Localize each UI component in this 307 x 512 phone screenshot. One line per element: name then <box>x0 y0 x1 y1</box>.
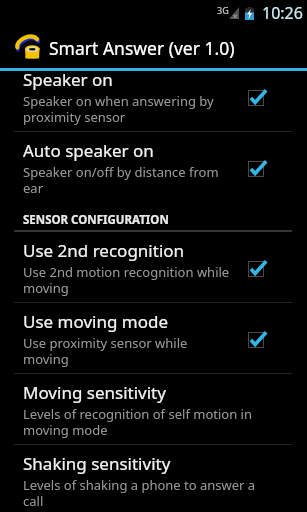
button[interactable]: Use 2nd recognition <box>0 232 307 302</box>
staticText: 10:26 <box>262 2 303 24</box>
staticText: Speaker on <box>23 68 113 91</box>
staticText: Moving sensitivity <box>23 381 166 404</box>
staticText: Use 2nd motion recognition while moving <box>23 263 232 296</box>
button[interactable]: Use 2nd recognition checkbox <box>232 232 288 302</box>
button[interactable]: Auto speaker on checkbox <box>232 132 288 202</box>
other: Battery charging <box>245 7 254 20</box>
staticText: Speaker on/off by distance from ear <box>23 163 232 196</box>
staticText: 3G <box>217 4 229 16</box>
button[interactable]: Shaking sensitivity <box>0 445 307 512</box>
staticText: Use 2nd recognition <box>23 239 185 262</box>
button[interactable]: Auto speaker on <box>0 132 307 202</box>
staticText: Smart Answer (ver 1.0) <box>49 36 235 60</box>
staticText: Shaking sensitivity <box>23 452 171 475</box>
staticText: Speaker on when answering by proximity s… <box>23 92 232 125</box>
other: Mobile signal <box>229 7 239 19</box>
button[interactable]: Speaker on checkbox <box>232 61 288 131</box>
other: Smart Answer app icon <box>17 36 40 59</box>
staticText: Use proximity sensor while moving <box>23 334 232 367</box>
staticText: SENSOR CONFIGURATION <box>23 212 169 228</box>
staticText: Levels of recognition of self motion in … <box>23 405 263 438</box>
staticText: Use moving mode <box>23 310 169 333</box>
staticText: Auto speaker on <box>23 139 154 162</box>
button[interactable]: Speaker on <box>0 61 307 131</box>
button[interactable]: Use moving mode checkbox <box>232 303 288 373</box>
button[interactable]: Moving sensitivity <box>0 374 307 444</box>
staticText: Levels of shaking a phone to answer a ca… <box>23 476 263 509</box>
button[interactable]: Use moving mode <box>0 303 307 373</box>
